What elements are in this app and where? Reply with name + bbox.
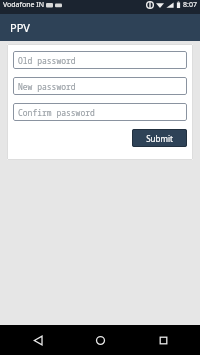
- staticText: Vodafone IN: [3, 0, 44, 10]
- staticText: Confirm password: [18, 107, 95, 118]
- button[interactable]: Recent apps: [138, 325, 188, 355]
- button[interactable]: Old password: [13, 51, 187, 69]
- staticText: 8:07: [183, 0, 197, 10]
- button[interactable]: Back: [13, 325, 63, 355]
- staticText: Submit: [146, 133, 173, 144]
- staticText: Old password: [18, 55, 76, 66]
- staticText: New password: [18, 81, 76, 92]
- staticText: PPV: [10, 20, 30, 35]
- button[interactable]: Home: [75, 325, 125, 355]
- button[interactable]: Confirm password: [13, 103, 187, 121]
- button[interactable]: New password: [13, 77, 187, 95]
- button[interactable]: Submit: [132, 129, 187, 147]
